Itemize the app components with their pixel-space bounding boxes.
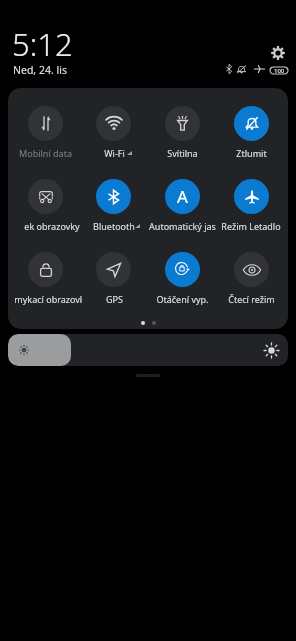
staticText: mykací obrazovk bbox=[14, 293, 82, 305]
staticText: Mobilní data bbox=[19, 147, 72, 159]
button[interactable]: Mobilní data bbox=[28, 106, 63, 141]
staticText: 100 bbox=[274, 67, 285, 74]
button[interactable]: Brightness bbox=[8, 334, 288, 366]
staticText: ek obrazovky bbox=[24, 220, 80, 232]
staticText: Ned, 24. lis bbox=[13, 63, 67, 77]
staticText: Bluetooth bbox=[93, 220, 135, 232]
staticText: Automatický jas bbox=[149, 220, 216, 232]
button[interactable]: Ztlumit bbox=[234, 106, 269, 141]
staticText: Ztlumit bbox=[236, 147, 267, 159]
button[interactable]: Bluetooth bbox=[96, 179, 131, 214]
button[interactable]: Settings bbox=[268, 43, 288, 63]
button[interactable]: Čtecí režim bbox=[234, 252, 269, 287]
button[interactable]: Režim Letadlo bbox=[234, 179, 269, 214]
staticText: Čtecí režim bbox=[228, 293, 275, 305]
button[interactable]: Otáčení vyp. bbox=[165, 252, 200, 287]
button[interactable]: Svítilna bbox=[165, 106, 200, 141]
staticText: Režim Letadlo bbox=[221, 220, 281, 232]
staticText: 5:12 bbox=[12, 23, 73, 65]
staticText: GPS bbox=[106, 293, 123, 305]
button[interactable]: Automatický jas bbox=[165, 179, 200, 214]
staticText: Svítilna bbox=[167, 147, 198, 159]
button[interactable]: mykací obrazovk bbox=[28, 252, 63, 287]
button[interactable]: GPS bbox=[96, 252, 131, 287]
staticText: Wi-Fi bbox=[104, 147, 125, 159]
button[interactable]: Wi-Fi bbox=[96, 106, 131, 141]
staticText: A bbox=[177, 185, 188, 208]
staticText: Otáčení vyp. bbox=[156, 293, 209, 305]
button[interactable]: ek obrazovky bbox=[28, 179, 63, 214]
